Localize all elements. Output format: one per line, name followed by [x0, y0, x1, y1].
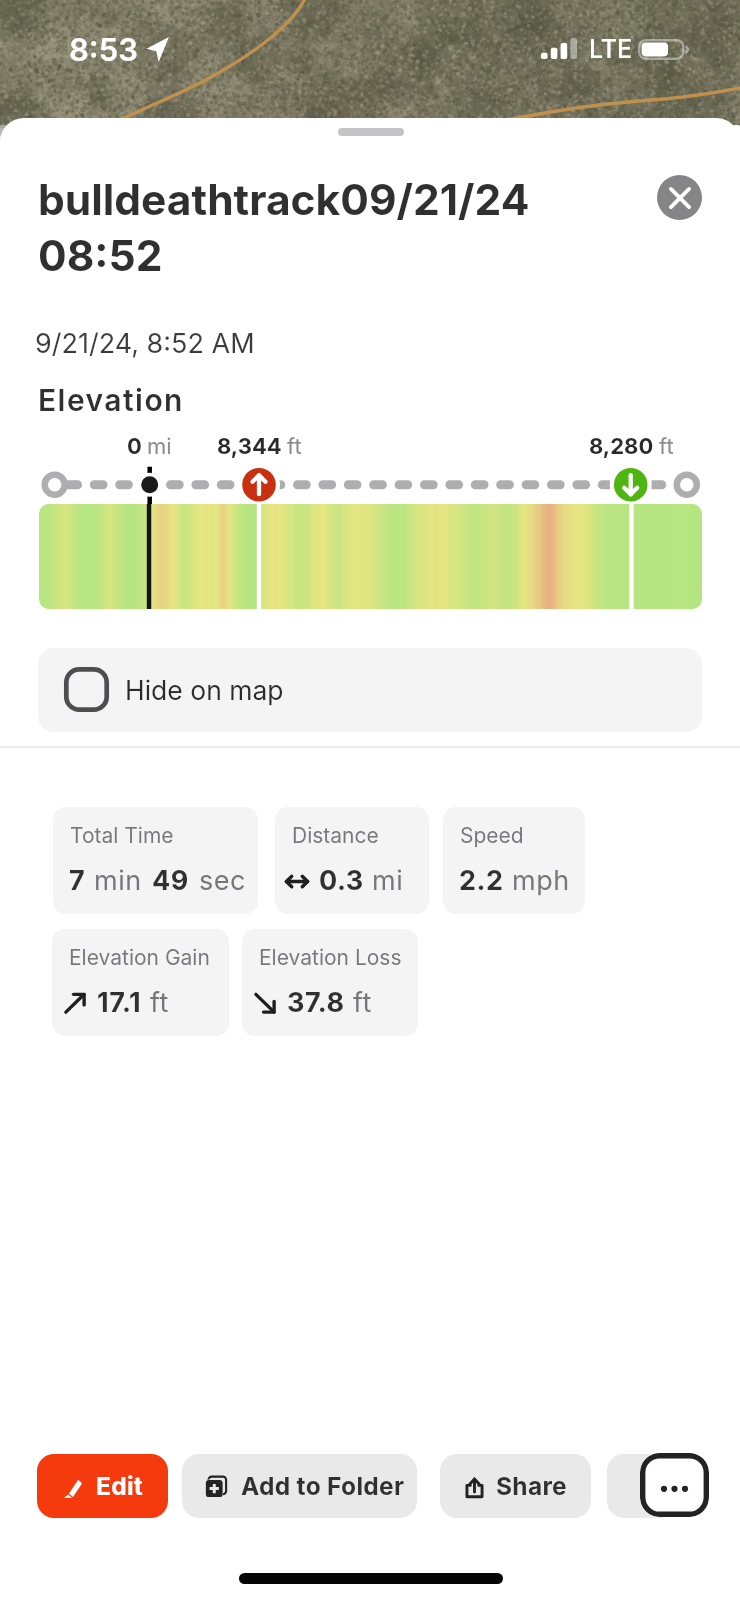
button[interactable]: Share [440, 1454, 591, 1518]
staticText: sec [199, 864, 246, 897]
button[interactable]: Elevation Gain [52, 929, 229, 1036]
staticText: Edit [96, 1471, 144, 1501]
button[interactable]: Hide on map [38, 648, 702, 732]
staticText: ft [150, 986, 169, 1019]
staticText: mi [147, 433, 172, 460]
staticText: Elevation Loss [259, 945, 402, 970]
staticText: Elevation [38, 382, 184, 418]
staticText: ft [353, 986, 372, 1019]
button[interactable]: Elevation Loss [242, 929, 418, 1036]
staticText: 17.1 [97, 986, 142, 1019]
staticText: 0.3 [319, 864, 364, 897]
staticText: min [94, 864, 142, 897]
button[interactable]: Close [657, 175, 702, 220]
staticText: mph [512, 864, 570, 897]
staticText: Total Time [70, 823, 174, 848]
button[interactable]: Distance [275, 807, 429, 914]
staticText: Speed [460, 823, 524, 848]
staticText: Distance [292, 823, 379, 848]
staticText: 37.8 [287, 986, 345, 1019]
staticText: 0 [127, 433, 142, 460]
button[interactable]: More options [640, 1453, 709, 1517]
staticText: mi [372, 864, 404, 897]
button[interactable]: Add to Folder [182, 1454, 417, 1518]
staticText: 8,344 [217, 433, 282, 460]
staticText: 2.2 [459, 864, 504, 897]
button[interactable]: Edit [37, 1454, 168, 1518]
staticText: LTE [589, 34, 633, 64]
staticText: Hide on map [125, 674, 284, 706]
staticText: ft [659, 433, 674, 460]
button[interactable]: Speed [443, 807, 585, 914]
staticText: Add to Folder [241, 1471, 405, 1501]
staticText: 9/21/24, 8:52 AM [35, 327, 255, 360]
staticText: Share [496, 1471, 567, 1501]
staticText: 7 [69, 864, 86, 897]
button[interactable]: Total Time [53, 807, 258, 914]
staticText: 8:53 [69, 31, 138, 69]
staticText: 49 [152, 864, 189, 897]
staticText: bulldeathtrack09/21/24 08:52 [38, 174, 548, 281]
staticText: 8,280 [589, 433, 654, 460]
staticText: ft [287, 433, 302, 460]
staticText: Elevation Gain [69, 945, 210, 970]
